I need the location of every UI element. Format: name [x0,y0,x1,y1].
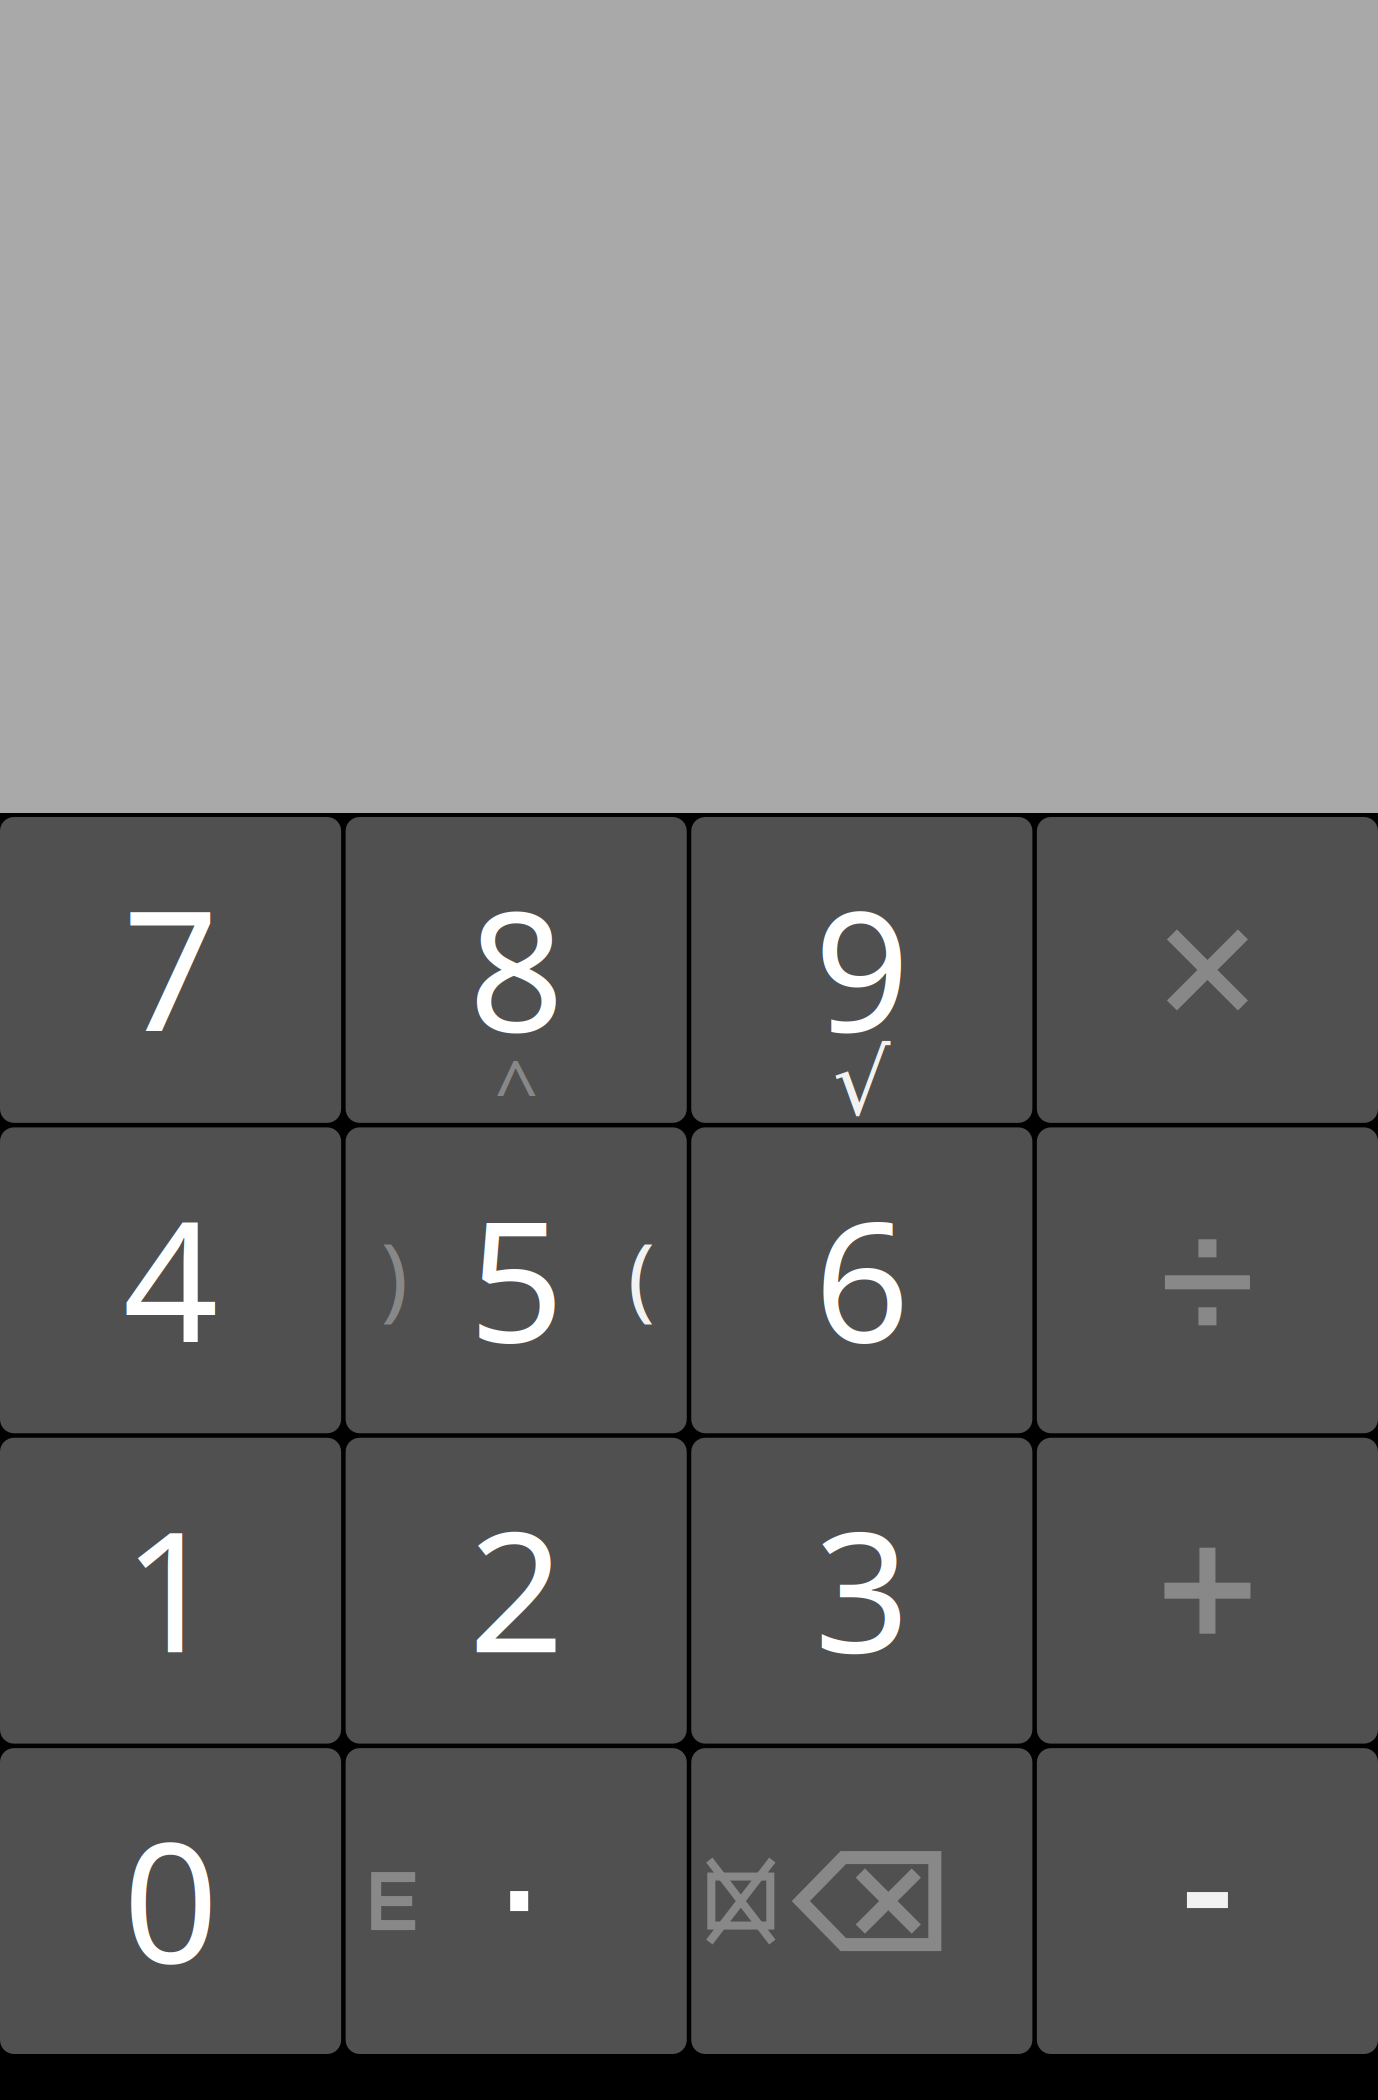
button[interactable]: 6 [691,1127,1032,1433]
button[interactable]: 8 [346,817,687,1123]
button[interactable]: 7 [0,817,341,1123]
button[interactable]: Divide [1037,1127,1378,1433]
button[interactable]: Multiply [1037,817,1378,1123]
button[interactable]: Delete [691,1748,1032,2054]
button[interactable]: Subtract [1037,1748,1378,2054]
button[interactable]: 4 [0,1127,341,1433]
staticText: 4 [123,1167,218,1388]
staticText: ) [381,1215,408,1335]
staticText: 6 [814,1167,909,1388]
button[interactable]: Add [1037,1438,1378,1744]
staticText: ^ [494,1036,538,1138]
button[interactable]: 0 [0,1748,341,2054]
staticText: 9 [814,856,909,1078]
staticText: 8 [469,856,564,1078]
staticText: 3 [814,1477,909,1698]
staticText: ( [628,1215,655,1335]
staticText: 7 [123,856,218,1078]
button[interactable]: 1 [0,1438,341,1744]
button[interactable]: 2 [346,1438,687,1744]
staticText: 5 [469,1167,564,1388]
staticText: 2 [469,1477,564,1698]
button[interactable]: Decimal point [346,1748,687,2054]
staticText: √ [833,1031,891,1134]
staticText: 1 [123,1477,218,1698]
button[interactable]: 3 [691,1438,1032,1744]
staticText: 0 [123,1787,218,2009]
button[interactable]: 5 [346,1127,687,1433]
button[interactable]: 9 [691,817,1032,1123]
